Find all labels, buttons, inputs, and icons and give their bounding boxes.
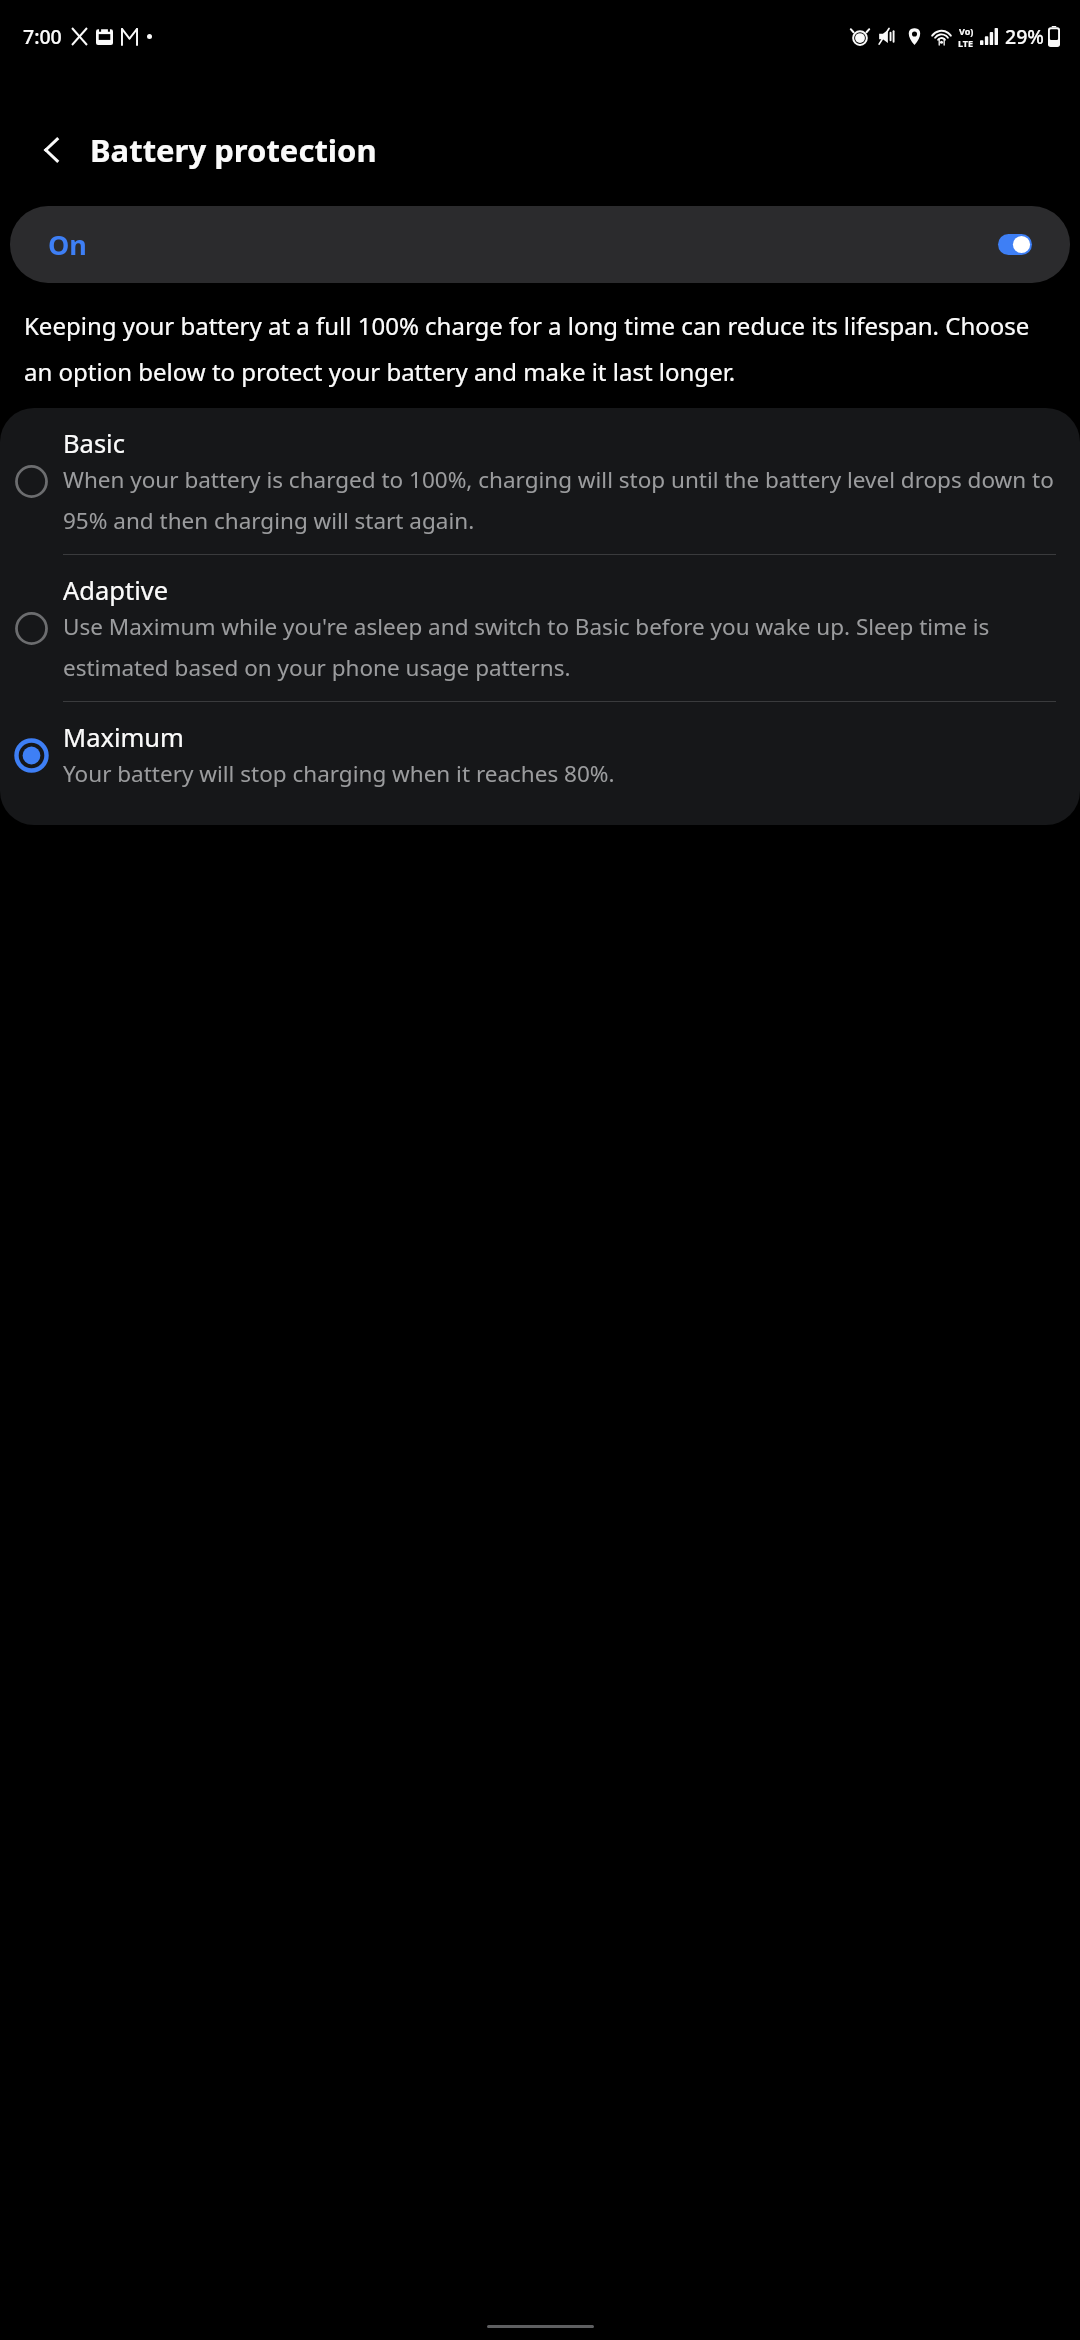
staticText: Your battery will stop charging when it … bbox=[63, 758, 615, 789]
staticText: Maximum bbox=[63, 720, 184, 755]
staticText: 29% bbox=[1005, 23, 1044, 50]
staticText: Use Maximum while you're asleep and swit… bbox=[63, 611, 1058, 683]
staticText: LTE bbox=[958, 37, 974, 49]
staticText: Keeping your battery at a full 100% char… bbox=[24, 309, 1062, 388]
staticText: 7:00 bbox=[23, 23, 62, 50]
button[interactable]: On bbox=[10, 206, 1070, 283]
staticText: Battery protection bbox=[90, 129, 377, 171]
button[interactable]: Navigate up bbox=[26, 124, 78, 176]
staticText: Vo) bbox=[959, 25, 974, 37]
staticText: When your battery is charged to 100%, ch… bbox=[63, 464, 1058, 536]
button[interactable]: Maximum bbox=[0, 702, 1080, 807]
button[interactable]: Adaptive bbox=[0, 555, 1080, 701]
staticText: Basic bbox=[63, 426, 125, 461]
button[interactable]: Basic bbox=[0, 408, 1080, 554]
staticText: Adaptive bbox=[63, 573, 169, 608]
staticText: On bbox=[48, 226, 87, 263]
